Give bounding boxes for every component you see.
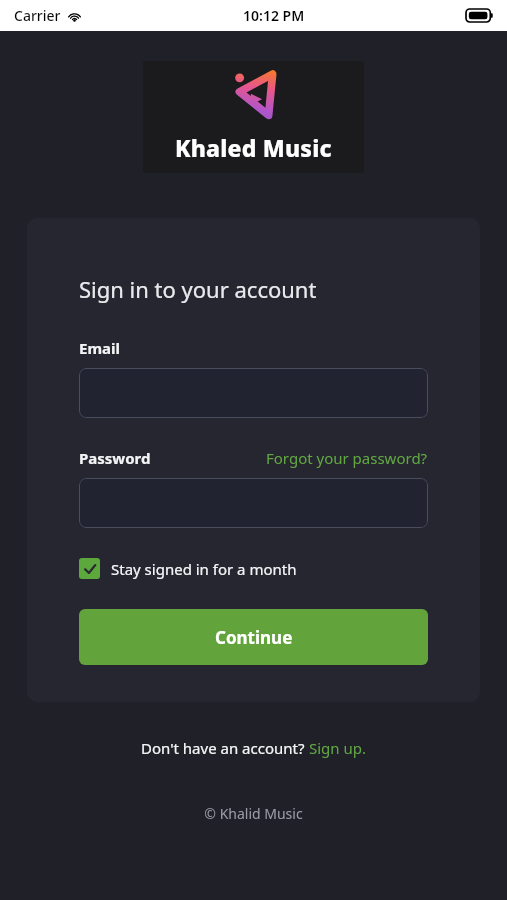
staticText: Stay signed in for a month [111, 559, 297, 579]
staticText: Don't have an account? [141, 738, 309, 758]
staticText: Sign in to your account [79, 274, 317, 304]
button[interactable]: Forgot your password? [266, 448, 428, 468]
staticText: Sign up. [309, 738, 367, 758]
other: Stay signed in checkbox [79, 558, 100, 579]
button[interactable]: Sign up. [309, 738, 367, 758]
button[interactable]: Stay signed in checkbox [79, 558, 297, 579]
staticText: Email [79, 338, 120, 358]
staticText: Forgot your password? [266, 448, 428, 468]
button[interactable] [79, 368, 428, 418]
button[interactable] [79, 478, 428, 528]
staticText: Carrier [14, 6, 61, 25]
button[interactable]: Continue [79, 609, 428, 665]
staticText: 10:12 PM [243, 6, 305, 25]
staticText: © Khalid Music [0, 804, 507, 823]
staticText: Continue [215, 626, 293, 649]
staticText: Khaled Music [175, 132, 332, 163]
staticText: Password [79, 448, 151, 468]
